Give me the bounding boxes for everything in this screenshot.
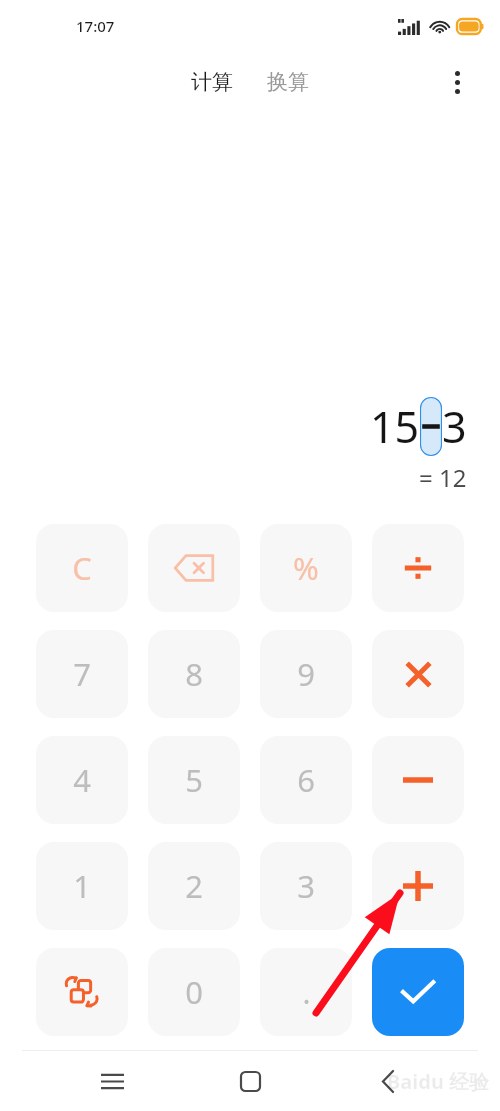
button[interactable]: 3 [260,842,352,930]
button[interactable]: 0 [148,948,240,1036]
staticText: 6 [297,759,315,801]
staticText: . [302,972,311,1013]
button[interactable]: C [36,524,128,612]
staticText: 0 [185,971,203,1013]
button[interactable]: Plus [372,842,464,930]
staticText: 17:07 [76,16,115,36]
button[interactable]: % [260,524,352,612]
button[interactable]: More options [440,65,474,99]
staticText: 7 [73,653,91,695]
button[interactable]: Back [362,1055,414,1107]
staticText: % [293,547,319,589]
staticText: = 12 [419,461,467,494]
staticText: 4 [73,759,91,801]
button[interactable]: 4 [36,736,128,824]
staticText: 3 [442,397,467,456]
button[interactable]: 换算 [261,65,315,99]
button[interactable]: . [260,948,352,1036]
button[interactable]: 8 [148,630,240,718]
button[interactable]: Multiply [372,630,464,718]
button[interactable]: 2 [148,842,240,930]
button[interactable] [420,397,442,456]
button[interactable]: Backspace [148,524,240,612]
button[interactable]: 5 [148,736,240,824]
button[interactable]: Equals [372,948,464,1036]
staticText: 15 [370,397,420,456]
button[interactable]: Home [224,1055,276,1107]
button[interactable]: 6 [260,736,352,824]
button[interactable]: Recents [86,1055,138,1107]
staticText: C [72,547,92,589]
staticText: 9 [297,653,315,695]
staticText: 计算 [191,69,233,95]
button[interactable]: 9 [260,630,352,718]
button[interactable]: 7 [36,630,128,718]
staticText: Baidu 经验 [387,1068,490,1095]
button[interactable]: Divide [372,524,464,612]
staticText: 1 [73,865,91,907]
staticText: 2 [185,865,203,907]
staticText: 5 [185,759,203,801]
staticText: 3 [297,865,315,907]
staticText: 8 [185,653,203,695]
button[interactable]: 1 [36,842,128,930]
staticText: 换算 [267,69,309,95]
button[interactable]: Minus [372,736,464,824]
button[interactable]: 计算 [185,65,239,99]
button[interactable]: Convert units [36,948,128,1036]
